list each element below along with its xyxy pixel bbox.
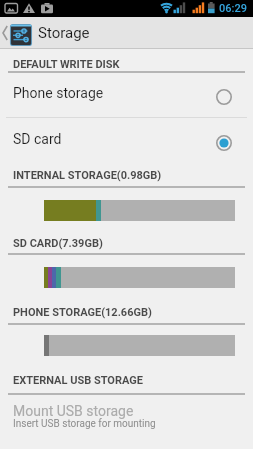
- button[interactable]: SD card: [0, 118, 253, 162]
- staticText: SD CARD(7.39GB): [13, 237, 103, 250]
- button[interactable]: Mount USB storage: [0, 395, 253, 449]
- staticText: Storage: [38, 24, 90, 42]
- staticText: SD card: [13, 131, 62, 147]
- staticText: Phone storage: [13, 85, 104, 101]
- button[interactable]: Storage: [0, 17, 253, 49]
- staticText: Mount USB storage: [13, 403, 134, 419]
- staticText: DEFAULT WRITE DISK: [13, 58, 120, 71]
- button[interactable]: Phone storage: [0, 73, 253, 117]
- staticText: EXTERNAL USB STORAGE: [13, 374, 143, 387]
- staticText: 06:29: [219, 2, 247, 15]
- staticText: Insert USB storage for mounting: [13, 418, 156, 430]
- staticText: INTERNAL STORAGE(0.98GB): [13, 169, 162, 182]
- staticText: PHONE STORAGE(12.66GB): [13, 306, 152, 319]
